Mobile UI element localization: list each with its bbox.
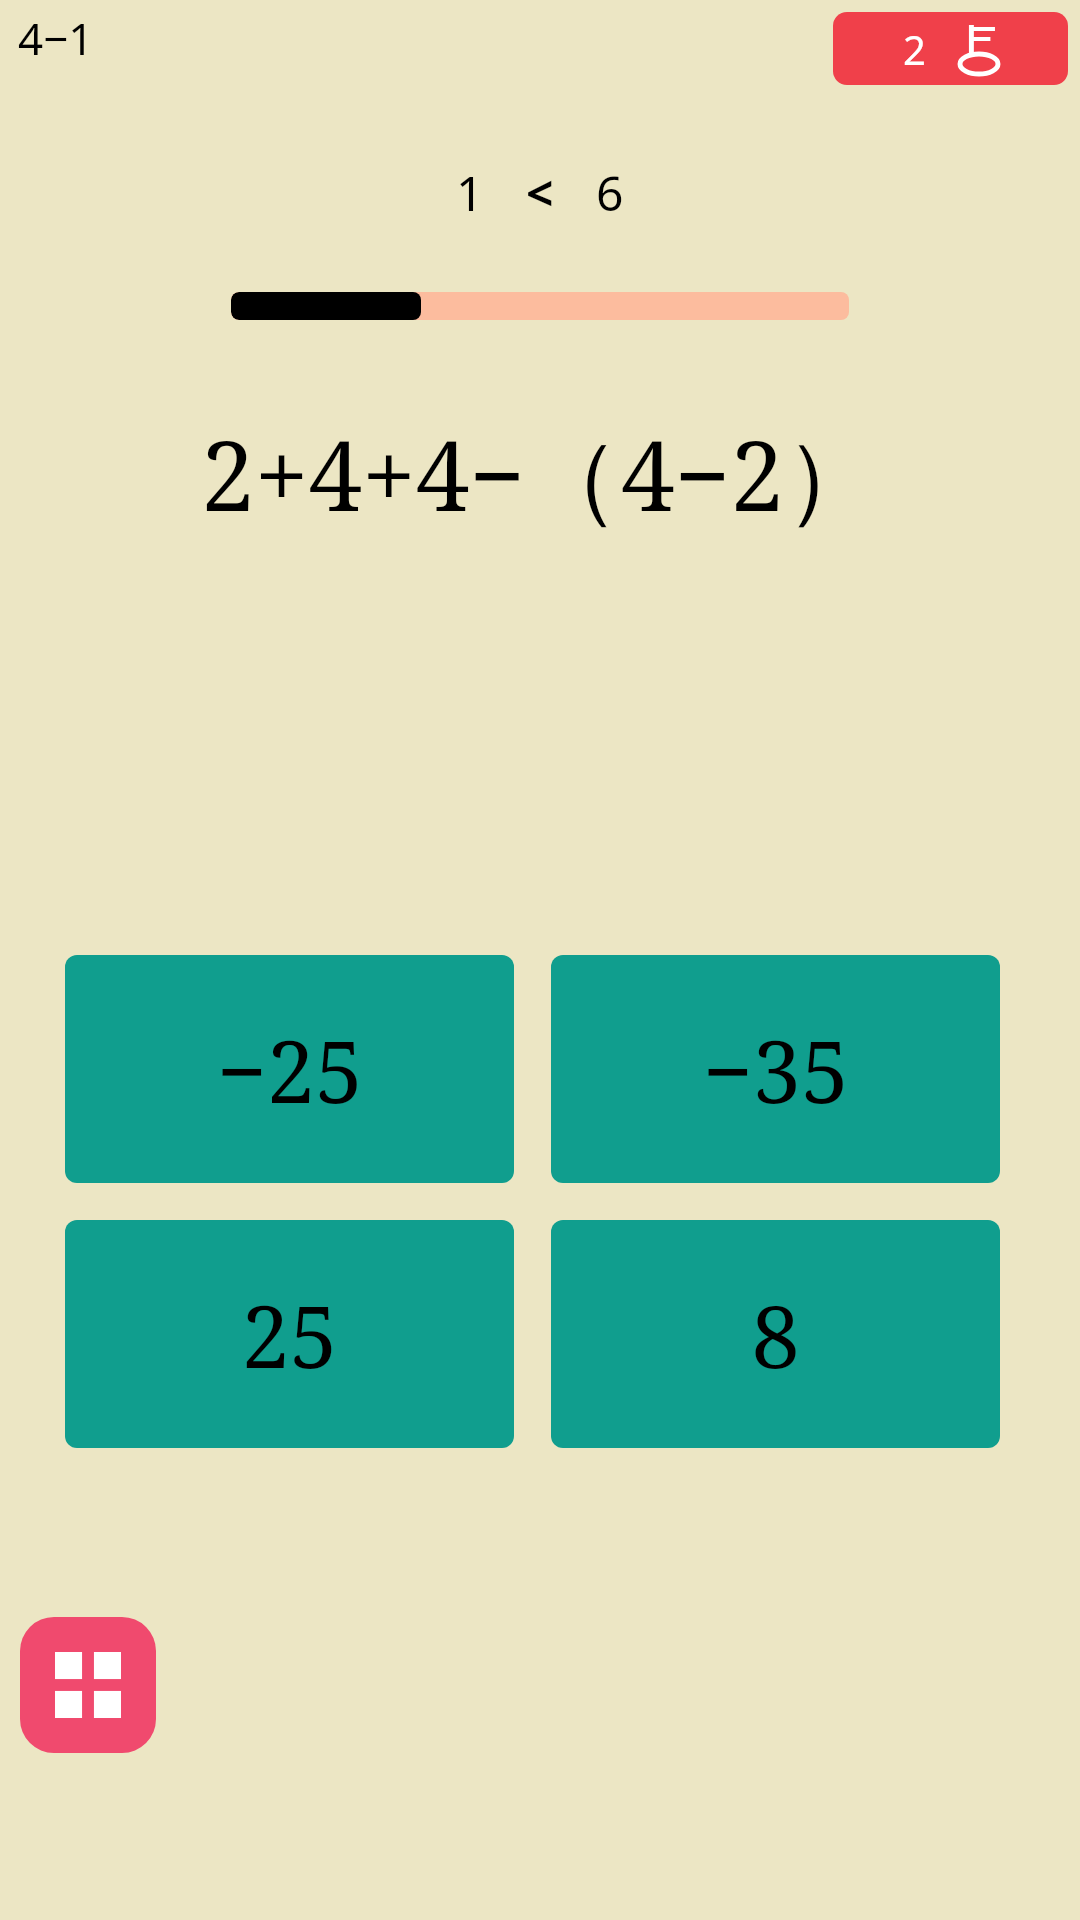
- button[interactable]: −35: [551, 955, 1000, 1183]
- button[interactable]: 25: [65, 1220, 514, 1448]
- button[interactable]: Keys: 2: [833, 12, 1068, 85]
- button[interactable]: 8: [551, 1220, 1000, 1448]
- staticText: −25: [217, 1011, 363, 1128]
- staticText: 2+4+4−（4−2）: [201, 408, 880, 539]
- staticText: 25: [241, 1276, 338, 1393]
- staticText: 1: [456, 160, 484, 225]
- staticText: 4−1: [18, 8, 94, 68]
- staticText: −35: [703, 1011, 849, 1128]
- staticText: 8: [751, 1276, 800, 1393]
- staticText: <: [526, 160, 554, 225]
- button[interactable]: Menu: [20, 1617, 156, 1753]
- button[interactable]: −25: [65, 955, 514, 1183]
- staticText: 6: [596, 160, 624, 225]
- staticText: 2: [903, 22, 926, 76]
- button[interactable]: 4−1: [18, 8, 94, 68]
